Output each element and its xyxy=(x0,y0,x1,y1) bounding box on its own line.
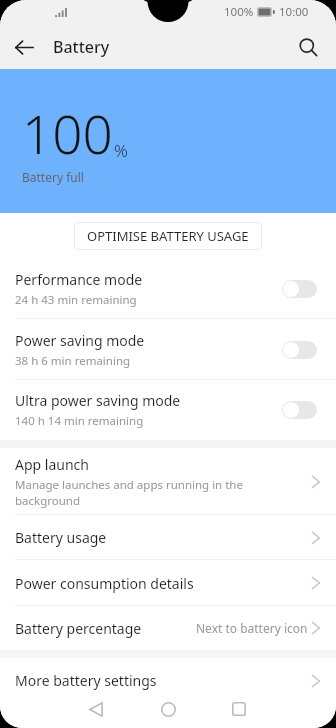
button[interactable]: Ultra power saving mode xyxy=(0,380,336,440)
staticText: 140 h 14 min remaining xyxy=(15,413,144,429)
button[interactable]: Back xyxy=(7,30,41,64)
staticText: OPTIMISE BATTERY USAGE xyxy=(87,227,249,245)
staticText: 100% xyxy=(224,4,254,20)
staticText: App launch xyxy=(15,455,89,474)
staticText: 38 h 6 min remaining xyxy=(15,353,131,369)
staticText: Battery xyxy=(53,36,110,58)
button[interactable]: App launch xyxy=(0,448,336,515)
staticText: 24 h 43 min remaining xyxy=(15,292,137,308)
staticText: % xyxy=(114,139,128,162)
button[interactable]: Power consumption details xyxy=(0,560,336,606)
button[interactable]: Search xyxy=(291,30,325,64)
button[interactable]: Recents xyxy=(209,697,269,721)
staticText: 10:00 xyxy=(279,4,309,20)
button[interactable]: Battery percentage xyxy=(0,606,336,650)
button[interactable]: Home xyxy=(138,697,198,721)
staticText: Battery usage xyxy=(15,528,308,547)
button[interactable]: Performance mode xyxy=(0,258,336,319)
button[interactable]: Back xyxy=(66,697,126,721)
staticText: 100 xyxy=(22,97,113,169)
staticText: Manage launches and apps running in the … xyxy=(15,477,243,508)
staticText: Ultra power saving mode xyxy=(15,391,181,410)
staticText: More battery settings xyxy=(15,671,308,690)
staticText: Power consumption details xyxy=(15,574,308,593)
staticText: Battery full xyxy=(22,169,84,185)
staticText: Performance mode xyxy=(15,270,143,289)
button[interactable]: Battery usage xyxy=(0,515,336,560)
staticText: Power saving mode xyxy=(15,331,145,350)
button[interactable]: Power saving mode xyxy=(0,319,336,380)
button[interactable]: OPTIMISE BATTERY USAGE xyxy=(74,222,262,250)
button[interactable]: More battery settings xyxy=(0,658,336,703)
staticText: Battery percentage xyxy=(15,619,196,638)
staticText: Next to battery icon xyxy=(196,620,308,636)
